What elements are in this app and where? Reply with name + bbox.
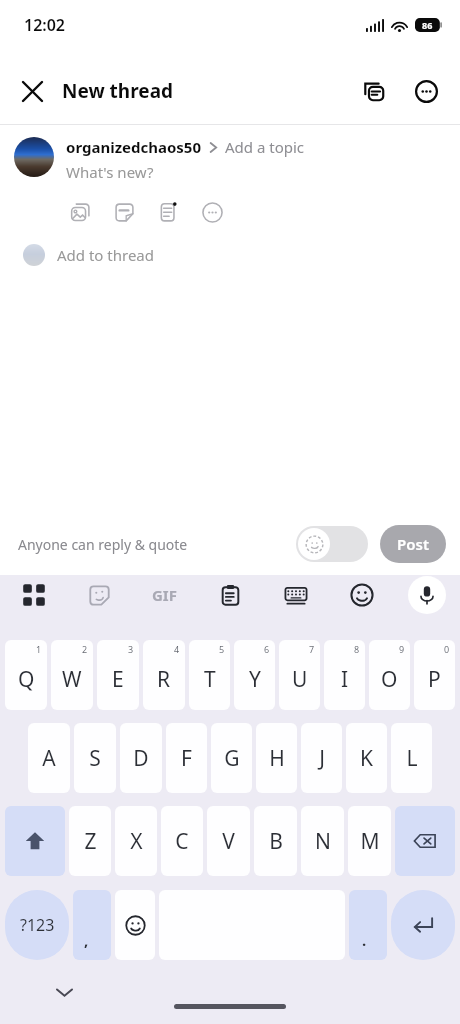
button[interactable]: Your profile photo (14, 137, 54, 177)
staticText: N (315, 827, 331, 856)
staticText: 9 (399, 643, 405, 655)
button[interactable]: Add photo (66, 198, 94, 226)
button[interactable]: GIF (144, 575, 184, 615)
button[interactable]: H (256, 723, 297, 793)
staticText: 2 (82, 643, 88, 655)
staticText: 6 (264, 643, 270, 655)
button[interactable]: 2 (51, 640, 93, 710)
button[interactable]: L (391, 723, 432, 793)
button[interactable]: More options (404, 69, 448, 113)
staticText: K (360, 744, 373, 773)
staticText: 12:02 (24, 14, 66, 36)
staticText: New thread (62, 78, 174, 104)
button[interactable]: Comma (73, 890, 111, 960)
button[interactable]: 6 (234, 640, 275, 710)
staticText: 3 (128, 643, 134, 655)
button[interactable]: 4 (143, 640, 185, 710)
button[interactable]: K (346, 723, 387, 793)
button[interactable]: ?123 (5, 890, 69, 960)
button[interactable]: Z (69, 806, 111, 876)
button[interactable]: Backspace (395, 806, 455, 876)
button[interactable]: What's new? (66, 162, 446, 182)
staticText: M (360, 827, 380, 856)
button[interactable]: S (74, 723, 116, 793)
button[interactable]: Enter (391, 890, 455, 960)
staticText: E (112, 665, 124, 694)
staticText: U (292, 665, 308, 694)
staticText: V (222, 827, 235, 856)
button[interactable]: More attachments (198, 198, 226, 226)
button[interactable]: Add a topic (225, 137, 305, 157)
staticText: 1 (36, 643, 42, 655)
button[interactable]: 3 (97, 640, 139, 710)
button[interactable]: Add poll (154, 198, 182, 226)
button[interactable]: F (166, 723, 207, 793)
button[interactable]: Emoji (342, 575, 382, 615)
button[interactable]: M (348, 806, 391, 876)
button[interactable]: J (301, 723, 342, 793)
button[interactable]: 5 (189, 640, 230, 710)
staticText: H (269, 744, 285, 773)
button[interactable]: Add to thread (14, 244, 446, 266)
button[interactable]: 7 (279, 640, 320, 710)
staticText: S (89, 744, 101, 773)
button[interactable]: 1 (5, 640, 47, 710)
button[interactable]: Clipboard (210, 575, 250, 615)
staticText: Q (18, 665, 35, 694)
button[interactable]: Close (10, 69, 54, 113)
staticText: 86 (422, 19, 433, 31)
staticText: Post (397, 534, 429, 554)
staticText: A (42, 744, 56, 773)
staticText: 4 (174, 643, 180, 655)
button[interactable]: B (254, 806, 297, 876)
staticText: 0 (444, 643, 450, 655)
staticText: P (428, 665, 441, 694)
button[interactable]: Voice input (408, 576, 446, 614)
staticText: . (362, 930, 367, 950)
staticText: 7 (309, 643, 315, 655)
button[interactable]: Keyboard settings (276, 575, 316, 615)
button[interactable]: Add GIF (110, 198, 138, 226)
button[interactable]: X (115, 806, 157, 876)
button[interactable]: organizedchaos50 (66, 137, 202, 157)
staticText: Y (249, 665, 261, 694)
staticText: G (224, 744, 240, 773)
button[interactable]: Shift (5, 806, 65, 876)
button[interactable]: Apps (14, 575, 54, 615)
button[interactable]: G (211, 723, 252, 793)
staticText: O (381, 665, 398, 694)
button[interactable]: 0 (414, 640, 455, 710)
button[interactable]: Emoji (115, 890, 155, 960)
button[interactable]: Audience toggle (296, 526, 368, 562)
staticText: 5 (219, 643, 225, 655)
staticText: 8 (354, 643, 360, 655)
button[interactable]: D (120, 723, 162, 793)
staticText: W (62, 665, 82, 694)
staticText: D (133, 744, 149, 773)
staticText: GIF (152, 585, 177, 605)
button[interactable]: C (161, 806, 203, 876)
button[interactable]: Anyone can reply & quote (18, 535, 188, 554)
button[interactable]: Post (380, 525, 446, 563)
staticText: J (319, 744, 325, 773)
button[interactable]: 9 (369, 640, 410, 710)
button[interactable]: N (301, 806, 344, 876)
staticText: T (204, 665, 216, 694)
button[interactable]: Stickers (79, 575, 119, 615)
button[interactable]: 8 (324, 640, 365, 710)
staticText: R (157, 665, 171, 694)
button[interactable]: Hide keyboard (46, 974, 82, 1010)
button[interactable]: Drafts (352, 69, 396, 113)
button[interactable]: A (28, 723, 70, 793)
staticText: L (406, 744, 418, 773)
staticText: X (130, 827, 143, 856)
staticText: I (341, 665, 349, 694)
staticText: F (181, 744, 192, 773)
button[interactable]: Period (349, 890, 387, 960)
staticText: Z (84, 827, 97, 856)
staticText: ?123 (20, 914, 55, 936)
staticText: Add to thread (57, 245, 155, 265)
button[interactable]: V (207, 806, 250, 876)
staticText: C (175, 827, 189, 856)
